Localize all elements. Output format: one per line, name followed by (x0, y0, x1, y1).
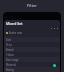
staticText: Material (6, 63, 17, 67)
staticText: Rating (6, 68, 14, 72)
button[interactable]: Material (4, 62, 60, 67)
button[interactable]: Sort (4, 37, 60, 42)
button[interactable]: Size range (4, 57, 60, 62)
staticText: Price (6, 43, 13, 47)
button[interactable]: Price (4, 42, 60, 47)
button[interactable]: Colour (4, 52, 60, 57)
staticText: Filter (27, 3, 37, 8)
button[interactable]: Brand (4, 47, 60, 52)
staticText: Mixed Set (6, 21, 23, 26)
staticText: Active now (9, 31, 23, 35)
staticText: Size range (6, 58, 19, 62)
staticText: Colour (6, 53, 15, 57)
button[interactable]: Rating (4, 67, 60, 72)
staticText: Brand (6, 48, 14, 52)
staticText: Sort (6, 38, 12, 42)
button[interactable]: Add (53, 64, 56, 67)
